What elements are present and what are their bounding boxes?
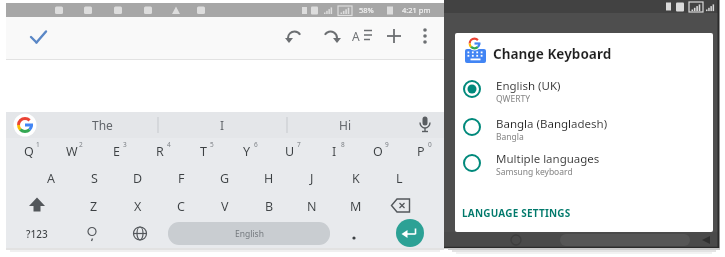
staticText: V [221,198,229,215]
staticText: The [92,117,113,133]
staticText: 4:21 pm [402,5,431,15]
button[interactable]: Z [74,193,114,219]
button[interactable]: Y [227,138,267,164]
button[interactable]: T [183,138,223,164]
button[interactable] [458,143,708,175]
staticText: L [396,170,403,187]
staticText: A [47,170,55,187]
button[interactable]: J [292,165,332,191]
staticText: 5 [210,140,214,149]
button[interactable]: LANGUAGE SETTINGS [462,202,582,224]
staticText: 1 [36,140,40,149]
button[interactable]: H [249,165,289,191]
button[interactable]: R [140,138,180,164]
staticText: English [235,228,264,240]
staticText: LANGUAGE SETTINGS [462,206,571,220]
staticText: G [220,170,230,187]
staticText: Multiple languages [496,151,600,167]
button[interactable]: N [292,193,332,219]
staticText: B [265,198,274,215]
button[interactable]: X [118,193,158,219]
staticText: H [264,170,274,187]
staticText: English (UK) [496,78,561,94]
staticText: R [156,143,164,160]
staticText: W [66,143,78,160]
staticText: 7 [297,140,301,149]
staticText: K [352,170,360,187]
button[interactable] [458,105,708,137]
staticText: ?123 [26,227,48,241]
staticText: F [178,170,185,187]
staticText: A [352,28,360,44]
staticText: J [310,170,314,187]
staticText: QWERTY [496,93,531,105]
button[interactable]: E [96,138,136,164]
staticText: T [200,143,207,160]
button[interactable]: English [168,222,330,245]
button[interactable]: O [358,138,398,164]
button[interactable]: V [205,193,245,219]
staticText: Q [24,143,34,160]
staticText: X [134,198,142,215]
button[interactable]: Q [9,138,49,164]
staticText: 58% [359,5,374,15]
staticText: Z [90,198,98,215]
staticText: Hi [339,117,351,133]
staticText: Samsung keyboard [496,166,573,178]
staticText: P [417,143,425,160]
staticText: Y [243,143,251,160]
button[interactable]: C [161,193,201,219]
staticText: E [113,143,120,160]
button[interactable]: F [161,165,201,191]
button[interactable]: L [379,165,419,191]
button[interactable]: K [336,165,376,191]
button[interactable]: U [270,138,310,164]
staticText: S [91,170,98,187]
button[interactable]: G [205,165,245,191]
staticText: N [307,198,317,215]
staticText: D [133,170,143,187]
staticText: Change Keyboard [493,45,612,63]
staticText: 2 [79,140,83,149]
button[interactable]: A [31,165,71,191]
button[interactable]: B [249,193,289,219]
staticText: 6 [254,140,258,149]
staticText: U [285,143,295,160]
staticText: Bangla (Bangladesh) [496,116,608,132]
button[interactable] [458,71,708,103]
staticText: 4 [167,140,171,149]
staticText: I [220,117,225,133]
button[interactable]: P [401,138,441,164]
staticText: M [350,198,362,215]
staticText: I [332,143,337,160]
button[interactable]: S [74,165,114,191]
staticText: C [177,198,185,215]
button[interactable]: D [118,165,158,191]
staticText: 9 [385,140,389,149]
button[interactable]: W [52,138,92,164]
staticText: 8 [341,140,345,149]
staticText: Bangla [496,131,524,143]
button[interactable]: M [336,193,376,219]
staticText: 3 [123,140,127,149]
button[interactable] [24,22,52,50]
button[interactable]: I [314,138,354,164]
staticText: O [373,143,383,160]
staticText: 0 [428,140,432,149]
